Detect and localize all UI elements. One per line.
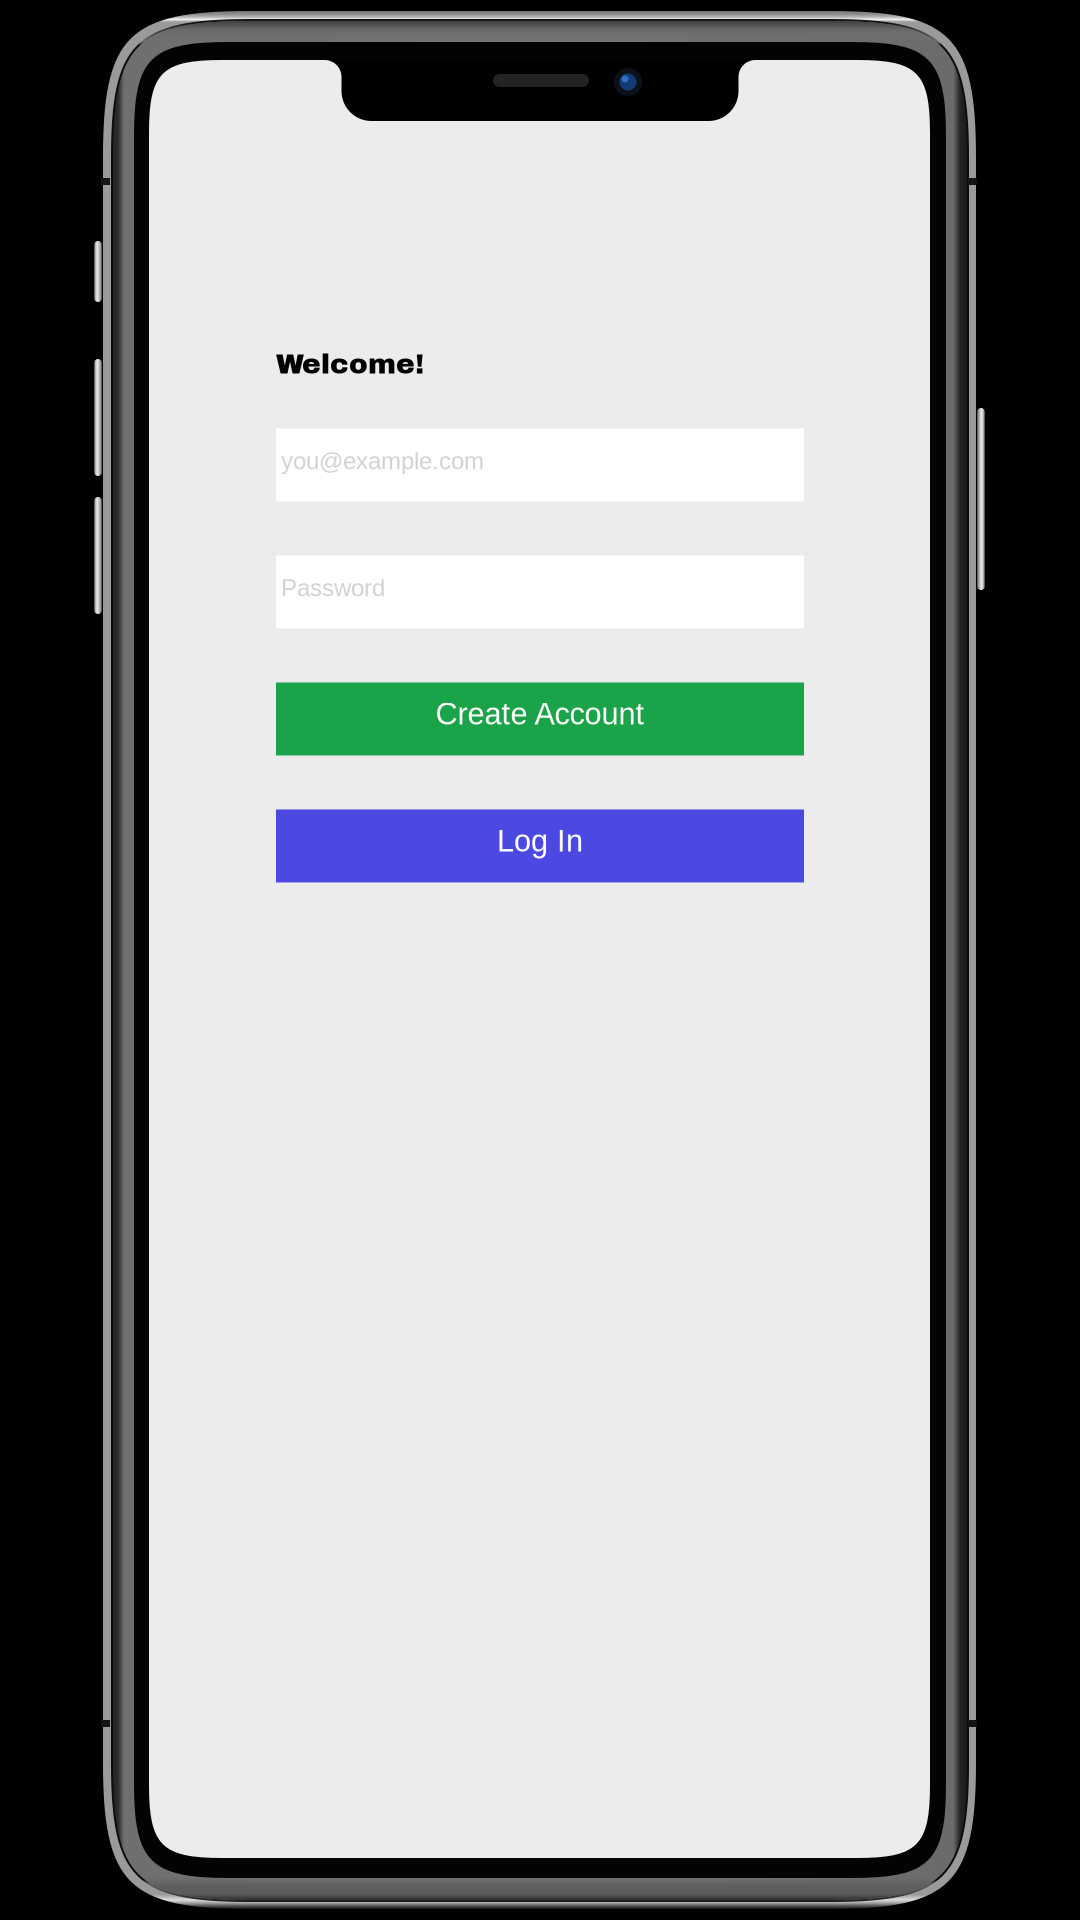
- button[interactable]: you@example.com: [276, 428, 804, 501]
- staticText: Log In: [497, 824, 583, 858]
- staticText: Welcome!: [276, 349, 424, 379]
- staticText: you@example.com: [281, 448, 484, 474]
- button[interactable]: Create Account: [276, 682, 804, 755]
- staticText: Password: [281, 575, 385, 601]
- button[interactable]: Password: [276, 555, 804, 628]
- staticText: Create Account: [435, 697, 644, 731]
- button[interactable]: Log In: [276, 809, 804, 882]
